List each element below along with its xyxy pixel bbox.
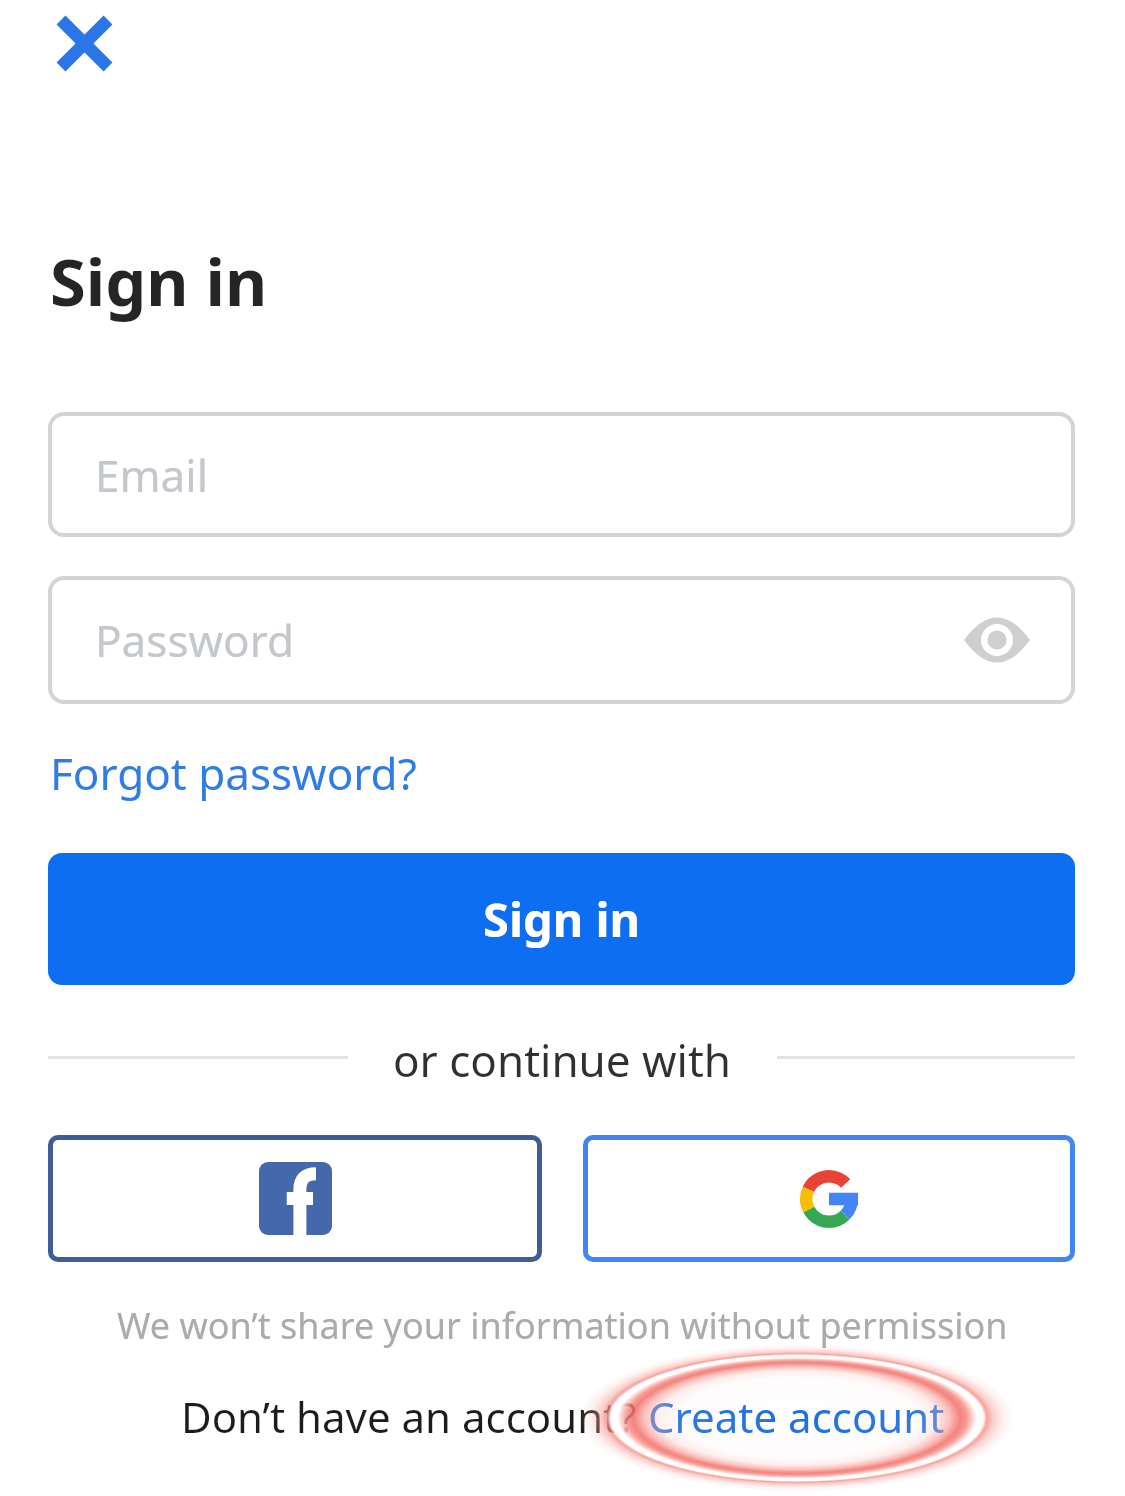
button[interactable]: Create account [648, 1388, 945, 1445]
button[interactable] [44, 3, 124, 83]
button[interactable]: Email [48, 412, 1075, 537]
button[interactable] [583, 1135, 1075, 1262]
button[interactable] [48, 1135, 542, 1262]
staticText: Sign in [483, 887, 641, 951]
staticText: Don’t have an account? [181, 1388, 648, 1445]
button[interactable]: Password [48, 576, 1075, 704]
staticText: We won’t share your information without … [117, 1301, 1008, 1350]
button[interactable]: Sign in [48, 853, 1075, 985]
staticText: Sign in [50, 237, 268, 326]
staticText: Password [95, 610, 295, 670]
staticText: or continue with [393, 1030, 732, 1090]
button[interactable]: Forgot password? [50, 743, 417, 803]
staticText: Email [95, 445, 208, 505]
